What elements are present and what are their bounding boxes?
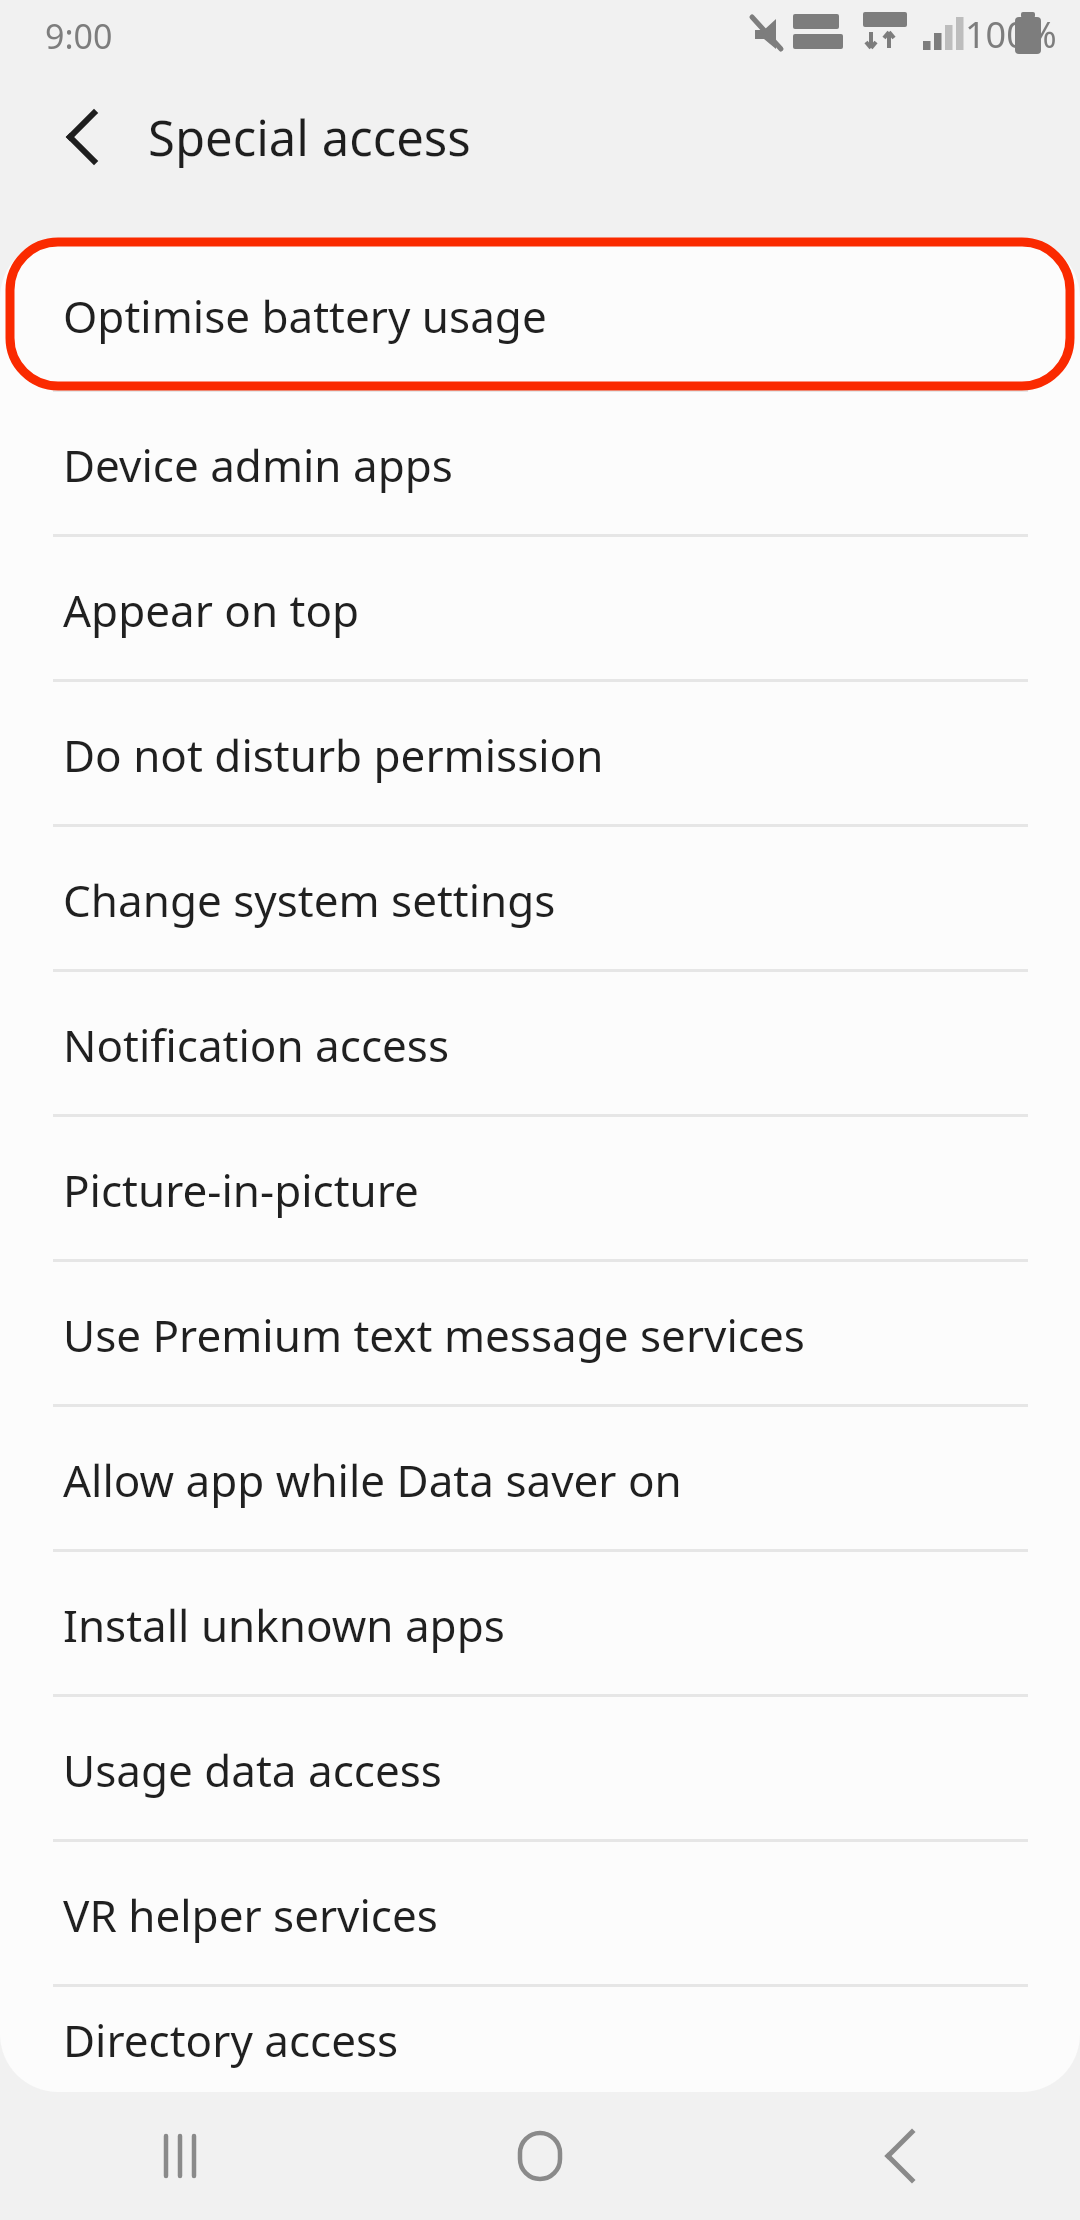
- staticText: Usage data access: [63, 1740, 442, 1800]
- button[interactable]: Back: [32, 87, 132, 187]
- staticText: Special access: [148, 104, 471, 171]
- staticText: Optimise battery usage: [63, 286, 547, 346]
- staticText: VR helper services: [63, 1885, 438, 1945]
- button[interactable]: Recents: [0, 2092, 360, 2220]
- staticText: Notification access: [63, 1015, 449, 1075]
- staticText: Allow app while Data saver on: [63, 1450, 682, 1510]
- staticText: Device admin apps: [63, 435, 453, 495]
- staticText: Directory access: [63, 2010, 399, 2070]
- button[interactable]: Notification access: [0, 972, 1080, 1117]
- button[interactable]: Install unknown apps: [0, 1552, 1080, 1697]
- staticText: Picture-in-picture: [63, 1160, 419, 1220]
- button[interactable]: Home: [360, 2092, 720, 2220]
- staticText: Use Premium text message services: [63, 1305, 805, 1365]
- staticText: 9:00: [45, 13, 113, 59]
- button[interactable]: Change system settings: [0, 827, 1080, 972]
- staticText: Do not disturb permission: [63, 725, 604, 785]
- button[interactable]: Usage data access: [0, 1697, 1080, 1842]
- button[interactable]: Appear on top: [0, 537, 1080, 682]
- staticText: Install unknown apps: [63, 1595, 505, 1655]
- button[interactable]: Allow app while Data saver on: [0, 1407, 1080, 1552]
- button[interactable]: VR helper services: [0, 1842, 1080, 1987]
- staticText: 100%: [965, 10, 1057, 59]
- button[interactable]: Device admin apps: [0, 392, 1080, 537]
- staticText: Change system settings: [63, 870, 556, 930]
- button[interactable]: Picture-in-picture: [0, 1117, 1080, 1262]
- button[interactable]: Back: [720, 2092, 1080, 2220]
- button[interactable]: Directory access: [0, 1987, 1080, 2092]
- button[interactable]: Use Premium text message services: [0, 1262, 1080, 1407]
- staticText: Appear on top: [63, 580, 360, 640]
- button[interactable]: Optimise battery usage: [0, 240, 1080, 392]
- button[interactable]: Do not disturb permission: [0, 682, 1080, 827]
